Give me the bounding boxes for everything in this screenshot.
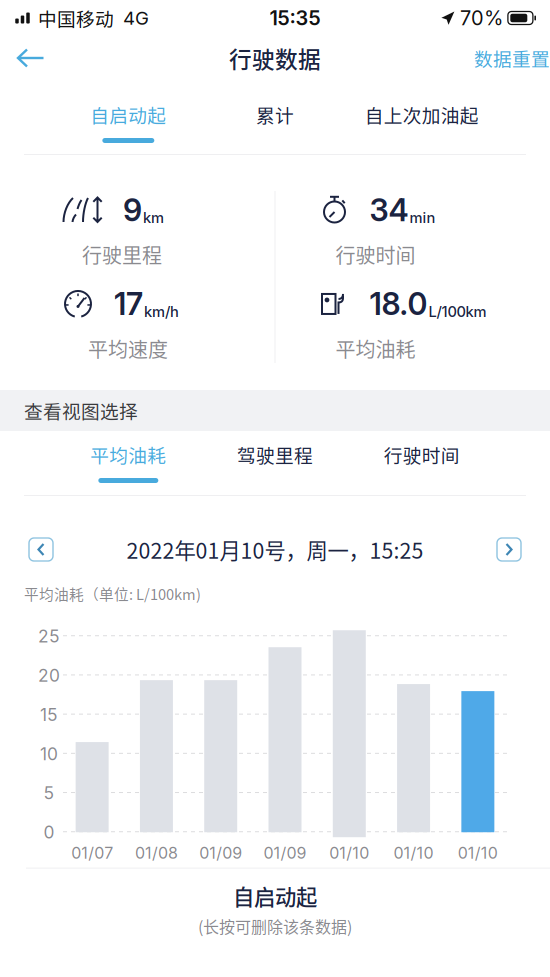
staticText: 自启动起 xyxy=(90,101,166,128)
staticText: 0 xyxy=(43,822,54,843)
staticText: 数据重置 xyxy=(474,44,550,71)
staticText: L/100km xyxy=(428,303,486,320)
staticText: 行驶数据 xyxy=(229,42,321,74)
button[interactable]: 下一条 xyxy=(491,530,527,569)
staticText: 驾驶里程 xyxy=(237,441,313,468)
staticText: 01/08 xyxy=(135,843,178,863)
staticText: 行驶里程 xyxy=(82,240,162,269)
staticText: 自启动起 xyxy=(233,881,317,911)
button[interactable]: 自上次加油起 xyxy=(348,101,495,143)
staticText: 中国移动 xyxy=(38,4,114,31)
button[interactable]: 平均油耗 xyxy=(55,441,202,483)
staticText: 平均油耗 xyxy=(90,441,166,468)
staticText: 20 xyxy=(38,665,60,686)
staticText: 01/07 xyxy=(71,843,113,863)
staticText: 平均速度 xyxy=(88,334,168,363)
staticText: 4G xyxy=(123,7,149,29)
staticText: 34 xyxy=(369,191,408,228)
staticText: 18.0 xyxy=(369,285,427,322)
staticText: 01/10 xyxy=(458,843,498,863)
staticText: 15:35 xyxy=(269,6,320,30)
staticText: 平均油耗（单位: L/100km) xyxy=(24,583,201,604)
staticText: 累计 xyxy=(256,101,294,128)
button[interactable]: 累计 xyxy=(202,101,348,143)
staticText: 15 xyxy=(40,704,58,725)
staticText: (长按可删除该条数据) xyxy=(198,914,352,938)
staticText: 01/10 xyxy=(329,843,369,863)
staticText: 自上次加油起 xyxy=(365,101,479,128)
staticText: 查看视图选择 xyxy=(24,397,138,424)
button[interactable]: 驾驶里程 xyxy=(202,441,348,483)
staticText: 70% xyxy=(460,6,503,30)
staticText: 10 xyxy=(40,743,58,764)
staticText: 01/09 xyxy=(199,843,242,863)
staticText: 01/09 xyxy=(263,843,306,863)
staticText: 01/10 xyxy=(394,843,434,863)
staticText: 行驶时间 xyxy=(384,441,460,468)
button[interactable]: 自启动起 xyxy=(55,101,202,143)
button[interactable]: 数据重置 xyxy=(464,32,550,83)
button[interactable]: 上一条 xyxy=(23,530,59,569)
staticText: km/h xyxy=(144,303,179,320)
staticText: 17 xyxy=(114,285,143,322)
staticText: 平均油耗 xyxy=(335,334,415,363)
button[interactable]: 返回 xyxy=(0,36,55,80)
button[interactable]: 行驶时间 xyxy=(348,441,495,483)
staticText: 9 xyxy=(123,191,142,228)
staticText: min xyxy=(409,209,435,226)
staticText: km xyxy=(143,209,164,226)
staticText: 5 xyxy=(43,783,54,804)
staticText: 25 xyxy=(38,626,60,647)
staticText: 2022年01月10号，周一，15:25 xyxy=(126,534,423,565)
staticText: 行驶时间 xyxy=(335,240,415,269)
